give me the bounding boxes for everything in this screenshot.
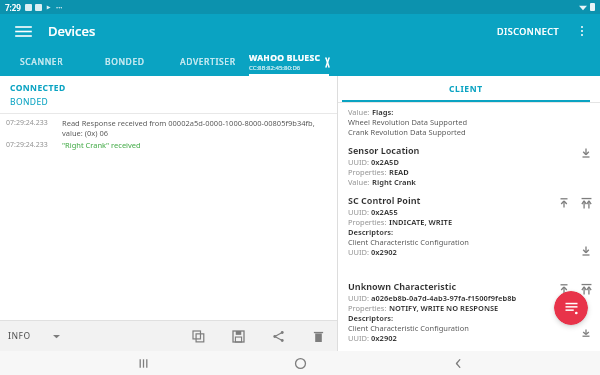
staticText: CLIENT bbox=[449, 83, 483, 95]
staticText: 0x2902 bbox=[371, 333, 397, 343]
staticText: 07:29:24.233 bbox=[6, 140, 58, 150]
button[interactable]: WAHOO BLUESC bbox=[249, 48, 329, 76]
button[interactable]: Recent apps bbox=[128, 351, 158, 375]
staticText: 0x2902 bbox=[371, 247, 397, 257]
staticText: 7:29 bbox=[5, 2, 21, 13]
staticText: Wheel Revolution Data Supported bbox=[348, 117, 468, 127]
staticText: Descriptors: bbox=[348, 313, 394, 323]
staticText: BONDED bbox=[10, 96, 49, 108]
staticText: UUID: bbox=[348, 293, 371, 303]
button[interactable]: Save bbox=[227, 325, 249, 347]
staticText: Unknown Characteristic bbox=[348, 280, 457, 292]
button[interactable]: Read descriptor bbox=[578, 243, 594, 259]
staticText: ··· bbox=[56, 2, 63, 13]
staticText: UUID: bbox=[348, 207, 371, 217]
staticText: Right Crank bbox=[372, 177, 417, 187]
button[interactable]: Delete bbox=[307, 325, 329, 347]
button[interactable]: Write bbox=[556, 195, 572, 211]
staticText: Devices bbox=[48, 22, 96, 40]
button[interactable]: Share bbox=[267, 325, 289, 347]
button[interactable]: Home bbox=[285, 351, 315, 375]
staticText: BONDED bbox=[105, 56, 145, 68]
staticText: WAHOO BLUESC bbox=[249, 52, 321, 64]
staticText: UUID: bbox=[348, 157, 371, 167]
staticText: a026eb8b-0a7d-4ab3-97fa-f1500f9feb8b bbox=[371, 293, 517, 303]
staticText: Descriptors: bbox=[348, 227, 394, 237]
staticText: UUID: bbox=[348, 247, 371, 257]
button[interactable]: Write bbox=[556, 281, 572, 297]
staticText: Value: bbox=[348, 107, 372, 117]
staticText: Sensor Location bbox=[348, 144, 420, 156]
staticText: 0x2A5D bbox=[371, 157, 399, 167]
staticText: Properties: bbox=[348, 303, 389, 313]
staticText: 0x2A55 bbox=[371, 207, 398, 217]
button[interactable]: SCANNER bbox=[0, 48, 83, 76]
staticText: ADVERTISER bbox=[180, 56, 236, 68]
staticText: SC Control Point bbox=[348, 194, 421, 206]
staticText: Read Response received from 00002a5d-000… bbox=[62, 118, 331, 138]
staticText: INFO bbox=[8, 330, 31, 342]
staticText: "Right Crank" received bbox=[62, 140, 331, 150]
button[interactable]: Toggle notifications bbox=[578, 281, 594, 297]
staticText: NOTIFY, WRITE NO RESPONSE bbox=[389, 303, 499, 313]
staticText: Flags: bbox=[372, 107, 394, 117]
button[interactable]: BONDED bbox=[83, 48, 166, 76]
button[interactable]: INFO bbox=[8, 330, 60, 342]
button[interactable]: Close tab bbox=[326, 55, 329, 69]
button[interactable]: Open navigation menu bbox=[10, 18, 36, 44]
staticText: DISCONNECT bbox=[497, 25, 560, 37]
button[interactable]: ADVERTISER bbox=[166, 48, 249, 76]
staticText: CONNECTED bbox=[10, 82, 66, 94]
staticText: Client Characteristic Configuration bbox=[348, 237, 469, 247]
button[interactable]: Toggle notifications bbox=[578, 195, 594, 211]
staticText: Properties: bbox=[348, 217, 389, 227]
staticText: UUID: bbox=[348, 333, 371, 343]
staticText: SCANNER bbox=[20, 56, 64, 68]
staticText: INDICATE, WRITE bbox=[389, 217, 453, 227]
button[interactable]: DISCONNECT bbox=[491, 20, 566, 42]
button[interactable]: Copy bbox=[187, 325, 209, 347]
staticText: Value: bbox=[348, 177, 372, 187]
button[interactable]: More options bbox=[570, 19, 594, 43]
button[interactable]: CLIENT bbox=[338, 76, 594, 102]
button[interactable]: Show log bbox=[554, 291, 588, 325]
staticText: Properties: bbox=[348, 167, 389, 177]
button[interactable]: Back bbox=[443, 351, 473, 375]
staticText: Crank Revolution Data Supported bbox=[348, 127, 466, 137]
staticText: READ bbox=[389, 167, 409, 177]
staticText: CC:8B:82:45:80:D6 bbox=[249, 64, 301, 72]
button[interactable]: Read bbox=[578, 145, 594, 161]
button[interactable]: Read descriptor bbox=[578, 329, 594, 337]
staticText: 07:29:24.233 bbox=[6, 118, 58, 128]
staticText: Client Characteristic Configuration bbox=[348, 323, 469, 333]
